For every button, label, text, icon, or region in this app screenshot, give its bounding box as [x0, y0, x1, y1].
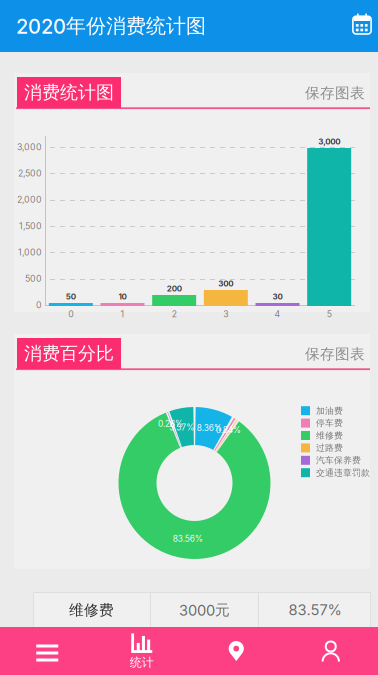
button[interactable]: Menu: [0, 627, 94, 675]
staticText: 5.57%: [169, 422, 194, 433]
staticText: 过路费: [316, 442, 343, 453]
staticText: 保存图表: [305, 345, 365, 363]
button[interactable]: Location: [189, 627, 283, 675]
staticText: 83.57%: [288, 601, 341, 619]
staticText: 汽车保养费: [316, 455, 361, 466]
staticText: 加油费: [316, 405, 343, 416]
staticText: 8.36%: [197, 423, 222, 433]
staticText: 消费统计图: [24, 81, 114, 104]
button[interactable]: Calendar: [344, 7, 378, 45]
staticText: 2: [172, 309, 177, 319]
staticText: 1: [120, 309, 124, 319]
staticText: 维修费: [69, 601, 114, 619]
button[interactable]: 保存图表: [293, 80, 370, 106]
staticText: 维修费: [316, 430, 343, 441]
staticText: 0.28%: [158, 419, 183, 429]
staticText: 交通违章罚款: [316, 467, 370, 478]
staticText: 2,000: [17, 194, 42, 205]
staticText: 300: [218, 279, 233, 288]
staticText: 200: [167, 284, 182, 293]
staticText: 5: [327, 309, 332, 319]
staticText: 保存图表: [305, 84, 365, 102]
staticText: 50: [66, 292, 76, 301]
staticText: 500: [25, 273, 42, 284]
staticText: 统计: [130, 655, 154, 670]
button[interactable]: Profile: [283, 627, 378, 675]
staticText: 3: [223, 309, 228, 319]
staticText: 停车费: [316, 418, 343, 429]
staticText: 10: [118, 292, 126, 301]
staticText: 消费百分比: [24, 342, 114, 365]
button[interactable]: 统计: [94, 627, 189, 675]
staticText: 4: [274, 309, 280, 319]
staticText: 2,500: [18, 168, 42, 179]
staticText: 3000元: [179, 601, 230, 619]
staticText: 1,500: [19, 221, 42, 231]
staticText: 83.56%: [173, 533, 203, 544]
staticText: 2020年份消费统计图: [16, 13, 206, 39]
staticText: 3,000: [318, 137, 340, 146]
staticText: 3,000: [17, 142, 42, 152]
button[interactable]: 保存图表: [293, 341, 370, 367]
staticText: 0.84%: [216, 425, 241, 435]
staticText: 30: [272, 292, 282, 301]
staticText: 0: [36, 300, 42, 310]
staticText: 1,000: [18, 247, 42, 258]
staticText: 0: [68, 309, 73, 319]
